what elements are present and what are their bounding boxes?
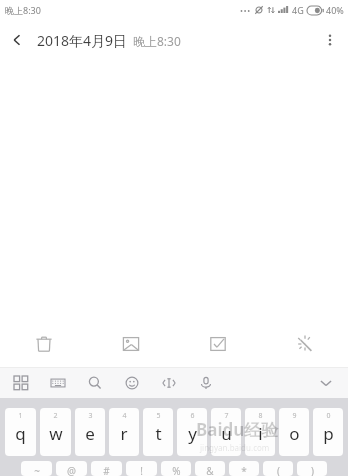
button[interactable]: Emoji — [121, 372, 143, 394]
button[interactable]: Apps — [10, 372, 32, 394]
button[interactable]: 8 — [245, 408, 275, 456]
staticText: y — [188, 422, 197, 445]
button[interactable]: ~ — [21, 461, 52, 476]
staticText: t — [155, 422, 162, 445]
button[interactable]: ) — [297, 461, 327, 476]
button[interactable]: 7 — [211, 408, 241, 456]
staticText: 5 — [156, 411, 161, 421]
button[interactable]: Back — [0, 23, 34, 57]
button[interactable]: 5 — [143, 408, 173, 456]
button[interactable]: # — [91, 461, 122, 476]
button[interactable]: Checklist — [174, 321, 261, 367]
button[interactable]: 0 — [313, 408, 343, 456]
staticText: 0 — [326, 411, 331, 421]
button[interactable]: ! — [126, 461, 157, 476]
button[interactable]: * — [229, 461, 259, 476]
staticText: & — [206, 464, 214, 476]
button[interactable]: Voice input — [195, 372, 217, 394]
button[interactable]: Insert image — [87, 321, 174, 367]
staticText: 7 — [224, 411, 229, 421]
button[interactable]: % — [161, 461, 191, 476]
staticText: 2 — [53, 411, 58, 421]
staticText: ) — [311, 464, 314, 476]
staticText: 晚上8:30 — [133, 33, 181, 49]
staticText: 40% — [326, 4, 344, 16]
staticText: 1 — [18, 411, 23, 421]
staticText: 8 — [258, 411, 263, 421]
button[interactable]: Move cursor — [158, 372, 180, 394]
staticText: 晚上8:30 — [5, 4, 41, 16]
button[interactable]: 2 — [40, 408, 71, 456]
button[interactable]: ( — [263, 461, 293, 476]
staticText: u — [221, 422, 232, 445]
staticText: ! — [140, 464, 143, 476]
button[interactable]: Beautify — [261, 321, 348, 367]
button[interactable]: 6 — [177, 408, 207, 456]
staticText: @ — [67, 464, 76, 476]
staticText: jingyan.baidu.com — [200, 442, 270, 453]
staticText: e — [85, 422, 95, 445]
button[interactable]: Keyboard layout — [47, 372, 69, 394]
staticText: 2018年4月9日 — [37, 31, 128, 50]
staticText: * — [241, 464, 247, 476]
staticText: q — [15, 422, 26, 445]
staticText: r — [120, 422, 128, 445]
staticText: 9 — [292, 411, 297, 421]
staticText: 4 — [122, 411, 127, 421]
button[interactable]: Delete — [0, 321, 87, 367]
staticText: ~ — [34, 464, 40, 476]
staticText: i — [258, 422, 263, 445]
staticText: ( — [277, 464, 280, 476]
staticText: 3 — [88, 411, 93, 421]
button[interactable]: 1 — [5, 408, 36, 456]
staticText: Baidu经验 — [196, 418, 279, 441]
staticText: % — [172, 464, 181, 476]
staticText: p — [323, 422, 334, 445]
staticText: w — [49, 422, 63, 445]
button[interactable]: 4 — [109, 408, 139, 456]
button[interactable]: 3 — [75, 408, 105, 456]
staticText: # — [103, 464, 110, 476]
staticText: 4G — [292, 4, 304, 16]
button[interactable]: 9 — [279, 408, 309, 456]
button[interactable]: Search — [84, 372, 106, 394]
staticText: o — [289, 422, 300, 445]
button[interactable]: More options — [312, 22, 348, 58]
button[interactable]: & — [195, 461, 225, 476]
button[interactable]: Hide keyboard — [314, 371, 338, 395]
button[interactable]: @ — [56, 461, 87, 476]
staticText: 6 — [190, 411, 195, 421]
